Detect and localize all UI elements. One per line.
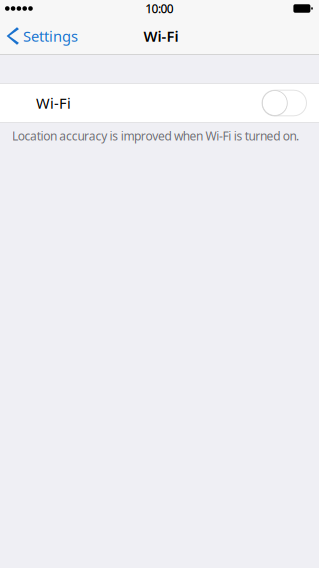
staticText: 10:00 (145, 0, 174, 16)
button[interactable]: Wi-Fi (0, 83, 319, 123)
button[interactable]: Settings (0, 17, 84, 55)
staticText: Location accuracy is improved when Wi-Fi… (12, 128, 299, 144)
staticText: Wi-Fi (143, 26, 178, 46)
staticText: Settings (23, 26, 78, 46)
staticText: Wi-Fi (36, 93, 71, 113)
